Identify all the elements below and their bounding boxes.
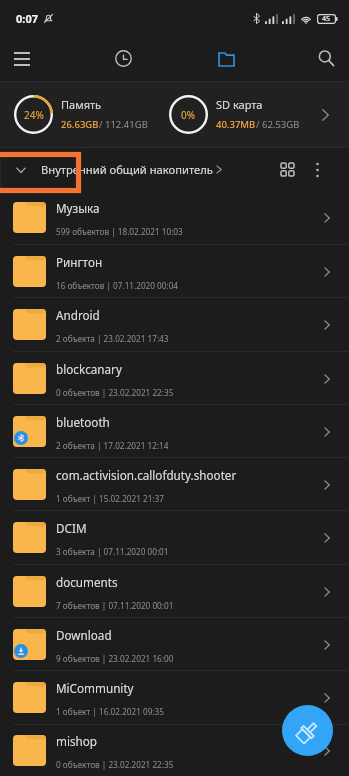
staticText: 24% <box>24 108 44 122</box>
staticText: mishop <box>56 733 98 749</box>
staticText: 3 объекта | 07.11.2020 00:01 <box>56 546 169 557</box>
staticText: com.activision.callofduty.shooter <box>56 467 237 483</box>
button[interactable]: Recent files <box>100 36 146 81</box>
staticText: 2 объекта | 23.02.2021 17:43 <box>56 333 169 344</box>
button[interactable]: 24% <box>8 82 163 147</box>
staticText: Память <box>61 97 102 112</box>
staticText: 0% <box>181 108 196 122</box>
staticText: / 62.53GB <box>256 118 300 131</box>
staticText: Android <box>56 307 100 323</box>
staticText: 0 объектов | 23.02.2021 22:35 <box>56 387 174 398</box>
button[interactable]: 0% <box>163 82 308 147</box>
staticText: / 112.41GB <box>99 118 148 131</box>
staticText: 45 <box>322 14 331 24</box>
staticText: bluetooth <box>56 414 110 430</box>
staticText: Download <box>56 627 112 643</box>
staticText: 1 объект | 16.02.2021 09:35 <box>56 706 164 717</box>
staticText: 1 объект | 15.02.2021 21:37 <box>56 493 164 504</box>
button[interactable]: More options <box>300 148 334 191</box>
button[interactable]: com.activision.callofduty.shooter <box>0 457 349 510</box>
staticText: documents <box>56 574 118 590</box>
button[interactable]: documents <box>0 564 349 617</box>
button[interactable]: Grid view <box>265 148 309 191</box>
staticText: 40.37MB <box>216 118 256 131</box>
button[interactable]: mishop <box>0 724 349 776</box>
button[interactable]: Storage details <box>308 82 342 147</box>
staticText: 2 объекта | 17.02.2021 12:14 <box>56 440 169 451</box>
staticText: MiCommunity <box>56 680 134 696</box>
button[interactable]: DCIM <box>0 510 349 564</box>
staticText: Внутренний общий накопитель <box>41 162 213 177</box>
staticText: 9 объектов | 23.02.2021 16:00 <box>56 653 174 664</box>
staticText: 26.63GB <box>61 118 99 131</box>
button[interactable]: blockcanary <box>0 351 349 404</box>
staticText: 7 объектов | 07.11.2020 00:01 <box>56 600 174 611</box>
button[interactable]: Search <box>303 36 349 81</box>
button[interactable]: Android <box>0 297 349 351</box>
button[interactable]: bluetooth <box>0 404 349 457</box>
staticText: Рингтон <box>56 254 103 270</box>
button[interactable]: Внутренний общий накопитель <box>0 148 222 191</box>
button[interactable]: Menu <box>0 36 45 81</box>
staticText: SD карта <box>216 97 263 112</box>
button[interactable]: Download <box>0 617 349 670</box>
button[interactable]: Рингтон <box>0 244 349 297</box>
staticText: Музыка <box>56 200 100 216</box>
button[interactable]: Музыка <box>0 191 349 244</box>
staticText: 0 объектов | 23.02.2021 22:35 <box>56 759 174 770</box>
staticText: DCIM <box>56 520 87 536</box>
button[interactable]: MiCommunity <box>0 670 349 724</box>
staticText: 0:07 <box>16 11 38 26</box>
button[interactable]: Clean up storage <box>282 705 333 756</box>
staticText: 16 объектов | 07.11.2020 00:04 <box>56 280 179 291</box>
staticText: 599 объектов | 18.02.2021 10:03 <box>56 226 183 237</box>
staticText: blockcanary <box>56 361 122 377</box>
button[interactable]: Files <box>203 36 249 81</box>
